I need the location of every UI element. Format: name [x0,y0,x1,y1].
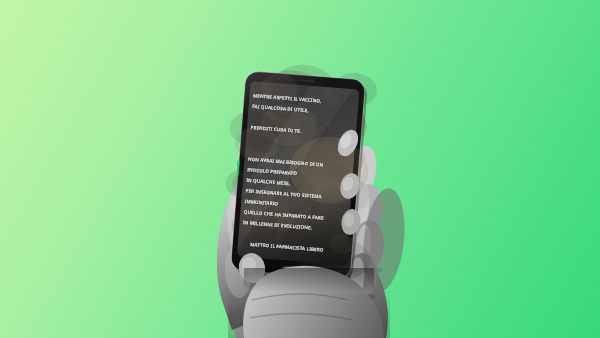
button[interactable]: Hand holding smartphone showing message [0,0,600,338]
